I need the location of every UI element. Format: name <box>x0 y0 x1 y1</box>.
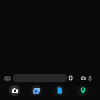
button[interactable]: Voice message <box>85 73 95 83</box>
button[interactable]: File <box>54 85 65 96</box>
button[interactable]: Camera <box>78 73 88 83</box>
button[interactable] <box>13 74 67 82</box>
button[interactable]: Gallery <box>31 85 42 96</box>
button[interactable]: Add photo <box>2 73 12 83</box>
button[interactable]: Take photo <box>9 85 20 96</box>
button[interactable]: Emoji <box>65 73 75 83</box>
button[interactable]: Location <box>77 85 88 96</box>
